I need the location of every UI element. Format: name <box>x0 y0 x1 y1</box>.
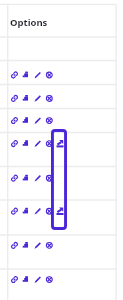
button[interactable]: Edit <box>32 115 44 127</box>
button[interactable]: Edit <box>32 205 44 217</box>
button[interactable]: Format paint <box>20 205 32 217</box>
button[interactable]: Cancel <box>44 115 56 127</box>
button[interactable]: Format paint <box>20 172 32 184</box>
button[interactable]: Link <box>9 115 21 127</box>
button[interactable]: Cancel <box>44 205 56 217</box>
button[interactable]: Open in browser <box>54 205 66 217</box>
staticText: Options <box>10 16 48 29</box>
button[interactable]: Link <box>9 138 21 150</box>
button[interactable]: Open in browser <box>54 138 66 150</box>
button[interactable]: Link <box>9 240 21 252</box>
button[interactable]: Format paint <box>20 115 32 127</box>
button[interactable]: Cancel <box>44 274 56 286</box>
button[interactable]: Cancel <box>44 93 56 105</box>
button[interactable]: Format paint <box>20 138 32 150</box>
button[interactable]: Link <box>9 172 21 184</box>
button[interactable]: Cancel <box>44 240 56 252</box>
button[interactable]: Edit <box>32 69 44 81</box>
button[interactable]: Cancel <box>44 69 56 81</box>
button[interactable]: Edit <box>32 274 44 286</box>
button[interactable]: Options <box>8 4 117 37</box>
button[interactable]: Link <box>9 205 21 217</box>
button[interactable]: Edit <box>32 93 44 105</box>
button[interactable]: Cancel <box>44 172 56 184</box>
button[interactable]: Edit <box>32 172 44 184</box>
button[interactable]: Link <box>9 274 21 286</box>
button[interactable]: Format paint <box>20 274 32 286</box>
button[interactable]: Edit <box>32 240 44 252</box>
button[interactable]: Edit <box>32 138 44 150</box>
button[interactable]: Link <box>9 69 21 81</box>
button[interactable]: Format paint <box>20 69 32 81</box>
button[interactable]: Format paint <box>20 93 32 105</box>
button[interactable]: Format paint <box>20 240 32 252</box>
button[interactable]: Link <box>9 93 21 105</box>
button[interactable]: Cancel <box>44 138 56 150</box>
